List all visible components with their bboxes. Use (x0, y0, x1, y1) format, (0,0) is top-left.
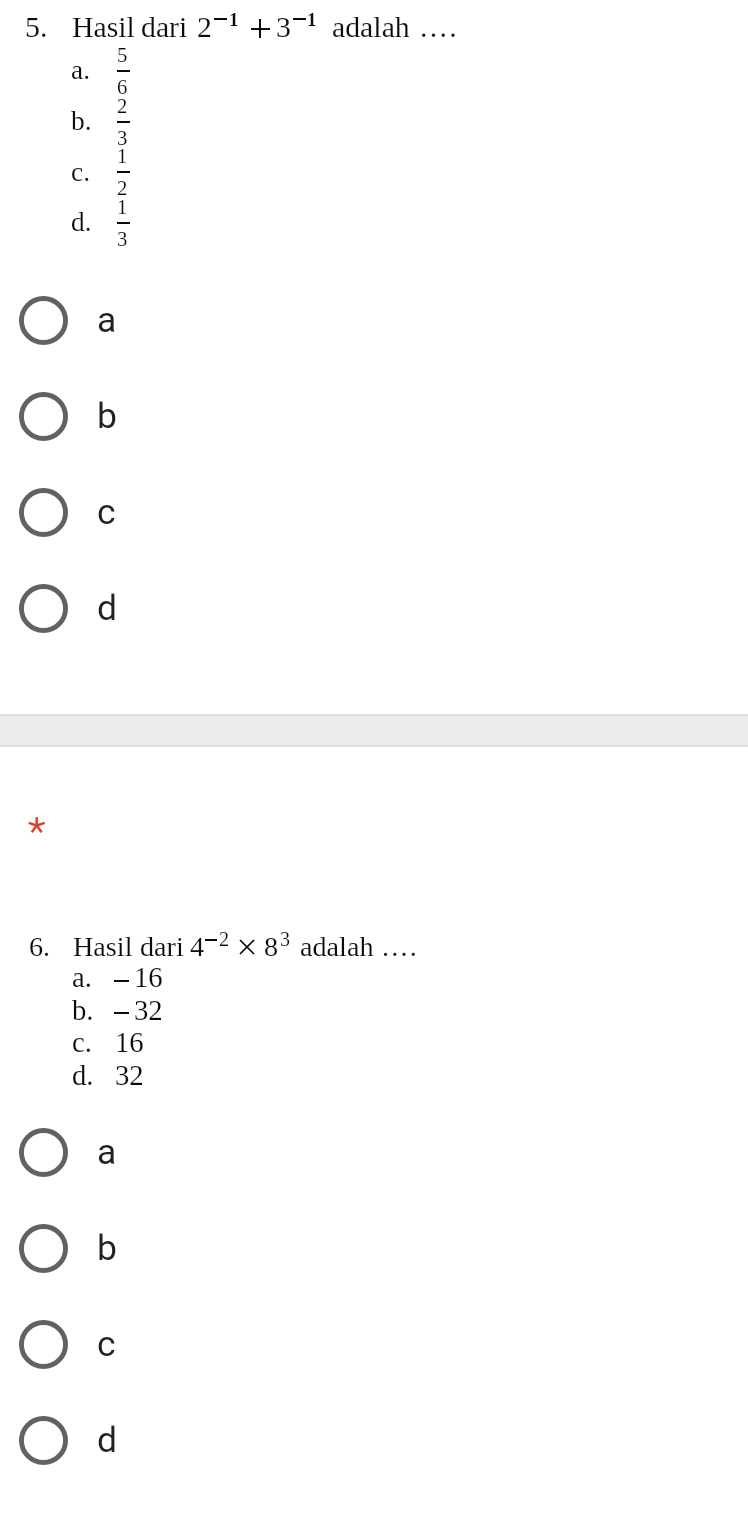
staticText: dari (141, 10, 188, 44)
button[interactable]: b (0, 1200, 748, 1296)
staticText: a (97, 1131, 117, 1173)
staticText: 32 (115, 1059, 144, 1092)
staticText: d. (72, 1059, 94, 1092)
staticText: 8 (264, 930, 279, 962)
staticText: Hasil (72, 10, 135, 44)
staticText: 2 (219, 928, 230, 951)
staticText: Hasil (73, 930, 133, 962)
staticText: 4 (190, 930, 205, 962)
staticText: 32 (134, 994, 163, 1027)
staticText: 6. (29, 930, 51, 962)
staticText: 1 (229, 9, 239, 31)
staticText: b. (71, 105, 92, 136)
staticText: a. (71, 54, 91, 85)
staticText: c. (71, 156, 91, 187)
staticText: 1 (117, 144, 128, 168)
staticText: 5 (117, 43, 128, 67)
staticText: d (97, 1419, 118, 1461)
staticText: c. (72, 1026, 92, 1059)
staticText: d (97, 587, 118, 629)
staticText: c (97, 1323, 116, 1365)
button[interactable]: b (0, 368, 748, 464)
staticText: a (97, 299, 117, 341)
staticText: b. (72, 994, 94, 1027)
button[interactable]: a (0, 1104, 748, 1200)
staticText: .... (382, 930, 419, 962)
button[interactable]: c (0, 1296, 748, 1392)
staticText: 16 (115, 1026, 144, 1059)
staticText: 2 (117, 176, 128, 200)
staticText: 1 (307, 9, 317, 31)
staticText: 3 (280, 928, 290, 951)
staticText: 16 (134, 961, 163, 994)
button[interactable]: a (0, 272, 748, 368)
button[interactable]: d (0, 1392, 748, 1488)
staticText: a. (72, 961, 92, 994)
staticText: 6 (117, 75, 128, 99)
staticText: 1 (117, 195, 128, 219)
staticText: 2 (117, 94, 128, 118)
staticText: .... (420, 10, 459, 44)
button[interactable]: d (0, 560, 748, 656)
staticText: c (97, 491, 116, 533)
staticText: 5. (25, 10, 48, 44)
staticText: adalah (332, 10, 410, 44)
staticText: dari (140, 930, 184, 962)
staticText: adalah (300, 930, 374, 962)
staticText: 3 (117, 126, 128, 150)
staticText: 3 (276, 10, 291, 44)
staticText: b (97, 1227, 117, 1269)
button[interactable]: c (0, 464, 748, 560)
other: Required question (22, 808, 52, 838)
staticText: 2 (197, 10, 212, 44)
staticText: d. (71, 206, 92, 237)
staticText: b (97, 395, 117, 437)
staticText: 3 (117, 227, 128, 251)
